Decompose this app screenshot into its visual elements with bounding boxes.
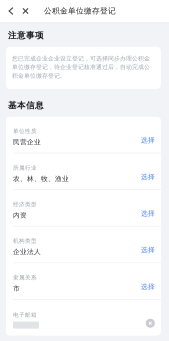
staticText: 选择 xyxy=(141,209,155,218)
staticText: 选择 xyxy=(141,172,155,181)
button[interactable]: 返回 xyxy=(4,0,18,22)
staticText: 单位性质 xyxy=(13,128,37,135)
staticText: 公积金单位缴存登记 xyxy=(44,6,116,16)
staticText: 企业法人 xyxy=(13,248,41,256)
button[interactable]: 所属行业 xyxy=(6,153,161,189)
staticText: 您已完成企业企业设立登记，可选择同步办理公积金单位缴存登记，待企业登记核准通过后… xyxy=(12,55,150,80)
staticText: 选择 xyxy=(141,282,155,291)
staticText: 选择 xyxy=(141,136,155,145)
button[interactable]: 机构类型 xyxy=(6,227,161,262)
staticText: 内资 xyxy=(13,211,27,219)
button[interactable]: 电子邮箱 xyxy=(6,300,161,336)
staticText: 电子邮箱 xyxy=(13,311,37,318)
staticText: 经济类型 xyxy=(13,201,37,208)
staticText: 市 xyxy=(13,284,20,293)
staticText: 注意事项 xyxy=(8,30,44,41)
staticText: 民营企业 xyxy=(13,138,41,146)
button[interactable]: 关闭 xyxy=(18,0,33,22)
staticText: 农、林、牧、渔业 xyxy=(13,174,69,183)
button[interactable]: 经济类型 xyxy=(6,190,161,226)
button[interactable]: 隶属关系 xyxy=(6,263,161,299)
staticText: 所属行业 xyxy=(13,164,37,171)
staticText: 隶属关系 xyxy=(13,274,37,281)
staticText: 机构类型 xyxy=(13,237,37,244)
staticText: 选择 xyxy=(141,246,155,254)
staticText: 基本信息 xyxy=(8,100,44,111)
button[interactable]: 单位性质 xyxy=(6,117,161,153)
